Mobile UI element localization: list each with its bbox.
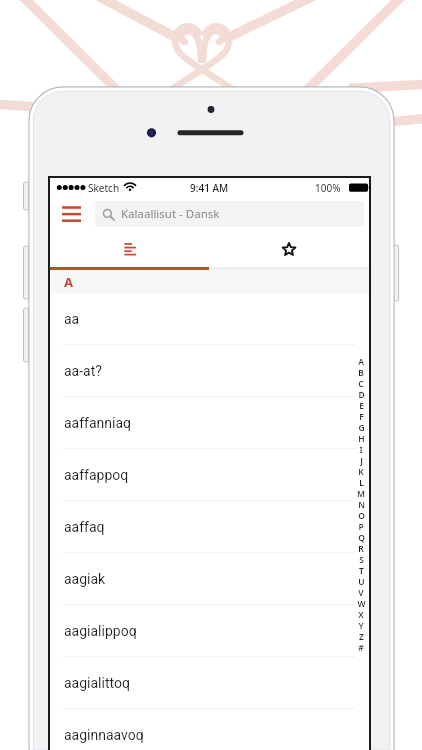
staticText: E [359, 400, 364, 411]
staticText: B [358, 367, 364, 378]
staticText: K [358, 466, 364, 477]
staticText: Sketch [88, 181, 120, 195]
staticText: aaffaq [64, 519, 105, 535]
staticText: P [358, 521, 364, 532]
button[interactable]: aagialippoq [50, 605, 369, 656]
staticText: N [358, 499, 365, 510]
staticText: aa-at? [64, 363, 102, 379]
button[interactable]: Alphabet scroll index [354, 356, 368, 653]
staticText: F [359, 411, 364, 422]
staticText: R [358, 543, 364, 554]
staticText: aaginnaavoq [64, 727, 144, 743]
staticText: aagialittoq [64, 675, 130, 691]
staticText: J [360, 455, 363, 466]
staticText: G [358, 422, 365, 433]
button[interactable]: Kalaallisut - Dansk [95, 201, 364, 227]
staticText: aaffanniaq [64, 415, 132, 431]
button[interactable]: Word list tab [50, 231, 209, 267]
button[interactable]: aaffaq [50, 501, 369, 552]
staticText: U [358, 576, 365, 587]
staticText: 9:41 AM [190, 181, 229, 195]
staticText: L [359, 477, 364, 488]
button[interactable]: aaffappoq [50, 449, 369, 500]
staticText: C [358, 378, 364, 389]
staticText: aagiak [64, 571, 106, 587]
staticText: O [358, 510, 365, 521]
staticText: 100% [315, 181, 341, 195]
staticText: X [358, 609, 364, 620]
staticText: A [358, 356, 364, 367]
staticText: I [359, 444, 363, 455]
staticText: # [358, 642, 364, 653]
staticText: Kalaallisut - Dansk [121, 206, 220, 222]
staticText: T [359, 565, 364, 576]
button[interactable]: aa-at? [50, 345, 369, 396]
staticText: W [357, 598, 366, 609]
staticText: V [358, 587, 364, 598]
staticText: Q [358, 532, 365, 543]
staticText: A [64, 273, 73, 291]
button[interactable]: aagiak [50, 553, 369, 604]
button[interactable]: Favorites tab [209, 231, 369, 267]
staticText: H [358, 433, 365, 444]
button[interactable]: aaginnaavoq [50, 709, 369, 750]
staticText: Y [358, 620, 364, 631]
staticText: S [359, 554, 364, 565]
button[interactable]: aa [50, 293, 369, 344]
staticText: aaffappoq [64, 467, 129, 483]
button[interactable]: Open navigation menu [57, 200, 86, 228]
staticText: aa [64, 311, 80, 327]
staticText: Z [359, 631, 364, 642]
staticText: aagialippoq [64, 623, 137, 639]
button[interactable]: aaffanniaq [50, 397, 369, 448]
staticText: M [357, 488, 365, 499]
button[interactable]: aagialittoq [50, 657, 369, 708]
staticText: D [358, 389, 365, 400]
